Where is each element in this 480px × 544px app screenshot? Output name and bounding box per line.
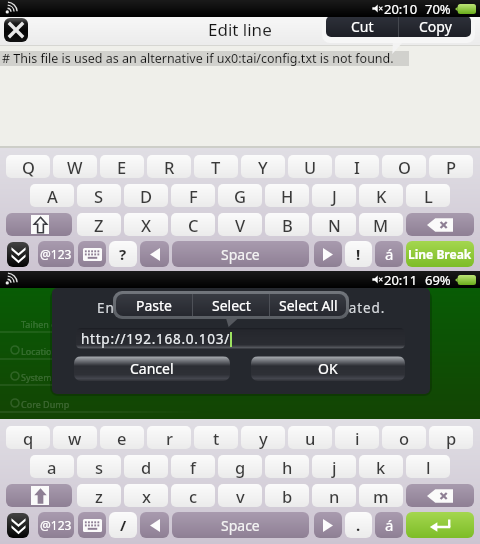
button[interactable]: R <box>147 155 191 178</box>
button[interactable]: Keyboard layout <box>78 512 106 538</box>
button[interactable]: Cursor right <box>314 512 342 538</box>
button[interactable]: O <box>382 155 426 178</box>
button[interactable]: G <box>218 184 262 207</box>
button[interactable]: Cursor left <box>140 241 169 267</box>
button[interactable]: m <box>359 484 403 507</box>
button[interactable]: J <box>312 184 356 207</box>
button[interactable]: c <box>171 484 215 507</box>
button[interactable]: N <box>312 213 356 236</box>
button[interactable]: OK <box>251 356 405 381</box>
staticText: b <box>282 485 293 507</box>
button[interactable]: M <box>359 213 403 236</box>
button[interactable]: Cursor right <box>314 241 342 267</box>
button[interactable]: Q <box>6 155 50 178</box>
button[interactable]: K <box>359 184 403 207</box>
button[interactable]: h <box>265 455 309 478</box>
button[interactable]: W <box>53 155 97 178</box>
button[interactable]: L <box>406 184 450 207</box>
button[interactable]: / <box>109 512 137 538</box>
button[interactable]: x <box>124 484 168 507</box>
button[interactable]: http://192.168.0.103/ <box>76 328 405 349</box>
button[interactable]: C <box>171 213 215 236</box>
button[interactable]: Z <box>77 213 121 236</box>
button[interactable]: f <box>171 455 215 478</box>
button[interactable]: Keyboard layout <box>78 241 106 267</box>
button[interactable]: Cancel <box>74 356 230 381</box>
button[interactable]: Space <box>172 241 309 267</box>
button[interactable]: U <box>288 155 332 178</box>
button[interactable]: B <box>265 213 309 236</box>
staticText: E <box>117 156 127 178</box>
button[interactable]: Hide keyboard <box>7 242 29 267</box>
button[interactable]: p <box>429 426 473 449</box>
button[interactable]: Space <box>172 512 309 538</box>
button[interactable]: Backspace <box>406 213 474 236</box>
button[interactable]: e <box>100 426 144 449</box>
staticText: Y <box>258 156 268 178</box>
button[interactable]: r <box>147 426 191 449</box>
button[interactable]: l <box>406 455 450 478</box>
button[interactable]: T <box>194 155 238 178</box>
button[interactable]: I <box>335 155 379 178</box>
button[interactable]: Cut <box>326 16 398 37</box>
button[interactable]: Paste <box>116 294 192 316</box>
button[interactable]: Symbols <box>38 241 74 267</box>
button[interactable]: Y <box>241 155 285 178</box>
button[interactable]: o <box>382 426 426 449</box>
staticText: P <box>446 156 457 178</box>
staticText: S <box>94 185 104 207</box>
button[interactable]: n <box>312 484 356 507</box>
button[interactable]: i <box>335 426 379 449</box>
button[interactable]: E <box>100 155 144 178</box>
button[interactable]: Line Break <box>406 241 474 267</box>
button[interactable]: b <box>265 484 309 507</box>
button[interactable]: Hide keyboard <box>7 513 29 538</box>
button[interactable]: Symbols <box>38 512 74 538</box>
staticText: Enter the address where ux0: is located. <box>97 299 386 317</box>
button[interactable]: ! <box>345 241 372 267</box>
button[interactable]: Accented characters <box>375 241 403 267</box>
button[interactable]: Shift <box>6 484 72 507</box>
button[interactable]: X <box>124 213 168 236</box>
staticText: Location Data <box>21 345 80 357</box>
button[interactable]: k <box>359 455 403 478</box>
button[interactable]: Cursor left <box>140 512 169 538</box>
button[interactable]: Copy <box>399 16 471 37</box>
button[interactable]: z <box>77 484 121 507</box>
button[interactable]: Enter <box>406 512 474 538</box>
button[interactable]: g <box>218 455 262 478</box>
staticText: I <box>354 156 360 178</box>
button[interactable]: P <box>429 155 473 178</box>
button[interactable]: Select All <box>270 294 346 316</box>
button[interactable]: ? <box>109 241 137 267</box>
button[interactable]: Backspace <box>406 484 474 507</box>
button[interactable]: H <box>265 184 309 207</box>
button[interactable]: Close <box>4 18 28 42</box>
button[interactable]: s <box>77 455 121 478</box>
button[interactable]: S <box>77 184 121 207</box>
button[interactable]: Shift <box>6 213 72 236</box>
staticText: y <box>259 427 268 449</box>
button[interactable]: a <box>30 455 74 478</box>
button[interactable]: v <box>218 484 262 507</box>
button[interactable]: A <box>30 184 74 207</box>
button[interactable]: w <box>53 426 97 449</box>
button[interactable]: j <box>312 455 356 478</box>
button[interactable]: u <box>288 426 332 449</box>
button[interactable]: t <box>194 426 238 449</box>
staticText: / <box>120 515 127 535</box>
staticText: j <box>332 456 337 478</box>
button[interactable]: Accented characters <box>375 512 403 538</box>
button[interactable]: q <box>6 426 50 449</box>
button[interactable]: d <box>124 455 168 478</box>
staticText: H <box>281 185 294 207</box>
button[interactable]: F <box>171 184 215 207</box>
button[interactable]: Select <box>193 294 269 316</box>
staticText: x <box>142 485 151 507</box>
button[interactable]: D <box>124 184 168 207</box>
staticText: Cut <box>351 17 374 36</box>
button[interactable]: V <box>218 213 262 236</box>
button[interactable]: y <box>241 426 285 449</box>
button[interactable]: . <box>345 512 372 538</box>
staticText: l <box>426 456 431 478</box>
